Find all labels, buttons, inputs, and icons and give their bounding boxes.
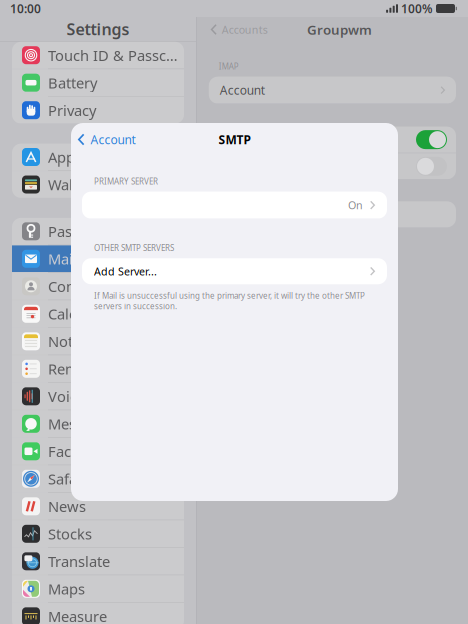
staticText: 100% [401,0,433,16]
button[interactable]: Messages [12,410,184,437]
button[interactable]: App Store [12,144,184,170]
button[interactable]: Wallet [12,171,184,198]
button[interactable]: Privacy [12,97,184,124]
staticText: Reminders [48,359,122,379]
staticText: Safari [48,469,87,489]
staticText: Battery [48,73,97,92]
staticText: Contacts [48,277,107,296]
button[interactable]: News [12,493,184,520]
staticText: Accounts [222,22,268,37]
button[interactable]: Safari [12,465,184,492]
staticText: Translate [48,552,110,571]
staticText: Calendar [48,304,109,324]
staticText: FaceTime [48,442,113,461]
button[interactable]: Reminders [12,355,184,382]
button[interactable]: Account [71,126,135,152]
staticText: If Mail is unsuccessful using the primar… [94,290,365,311]
staticText: Touch ID & Passcode [48,45,184,65]
staticText: PRIMARY SERVER [94,176,158,187]
button[interactable]: Calendar [12,300,184,327]
staticText: Measure [48,607,107,624]
staticText: Settings [66,18,129,40]
button[interactable]: Battery [12,69,184,96]
staticText: App Store [48,147,115,167]
button[interactable]: Contacts [12,273,184,300]
staticText: Add Server... [94,264,157,278]
button[interactable]: Touch ID & Passcode [12,42,184,69]
staticText: Voice Memos [48,387,140,406]
staticText: OTHER SMTP SERVERS [94,243,174,253]
button[interactable]: On [82,192,387,219]
button[interactable]: Notes [12,328,184,355]
button[interactable]: Add Server... [82,258,387,284]
staticText: Groupwm [307,21,372,38]
staticText: Maps [48,579,85,599]
staticText: On [348,198,363,212]
staticText: Account [90,131,135,147]
staticText: 10:00 [10,0,41,16]
staticText: Messages [48,414,115,434]
staticText: Passwords [48,222,122,241]
button[interactable]: Translate [12,548,184,575]
staticText: IMAP [219,61,239,72]
button[interactable]: Passwords [12,218,184,245]
staticText: Stocks [48,524,92,544]
staticText: Wallet [48,175,90,194]
staticText: SMTP [218,131,250,147]
button[interactable]: Voice Memos [12,383,184,410]
button[interactable]: Maps [12,575,184,602]
staticText: Notes [48,332,88,351]
button[interactable]: Measure [12,603,184,624]
staticText: Mail [48,249,77,269]
button[interactable]: FaceTime [12,438,184,465]
staticText: Privacy [48,100,96,120]
staticText: News [48,497,86,516]
button[interactable]: Stocks [12,520,184,547]
staticText: Account [220,82,265,98]
button[interactable]: Mail [12,245,184,272]
